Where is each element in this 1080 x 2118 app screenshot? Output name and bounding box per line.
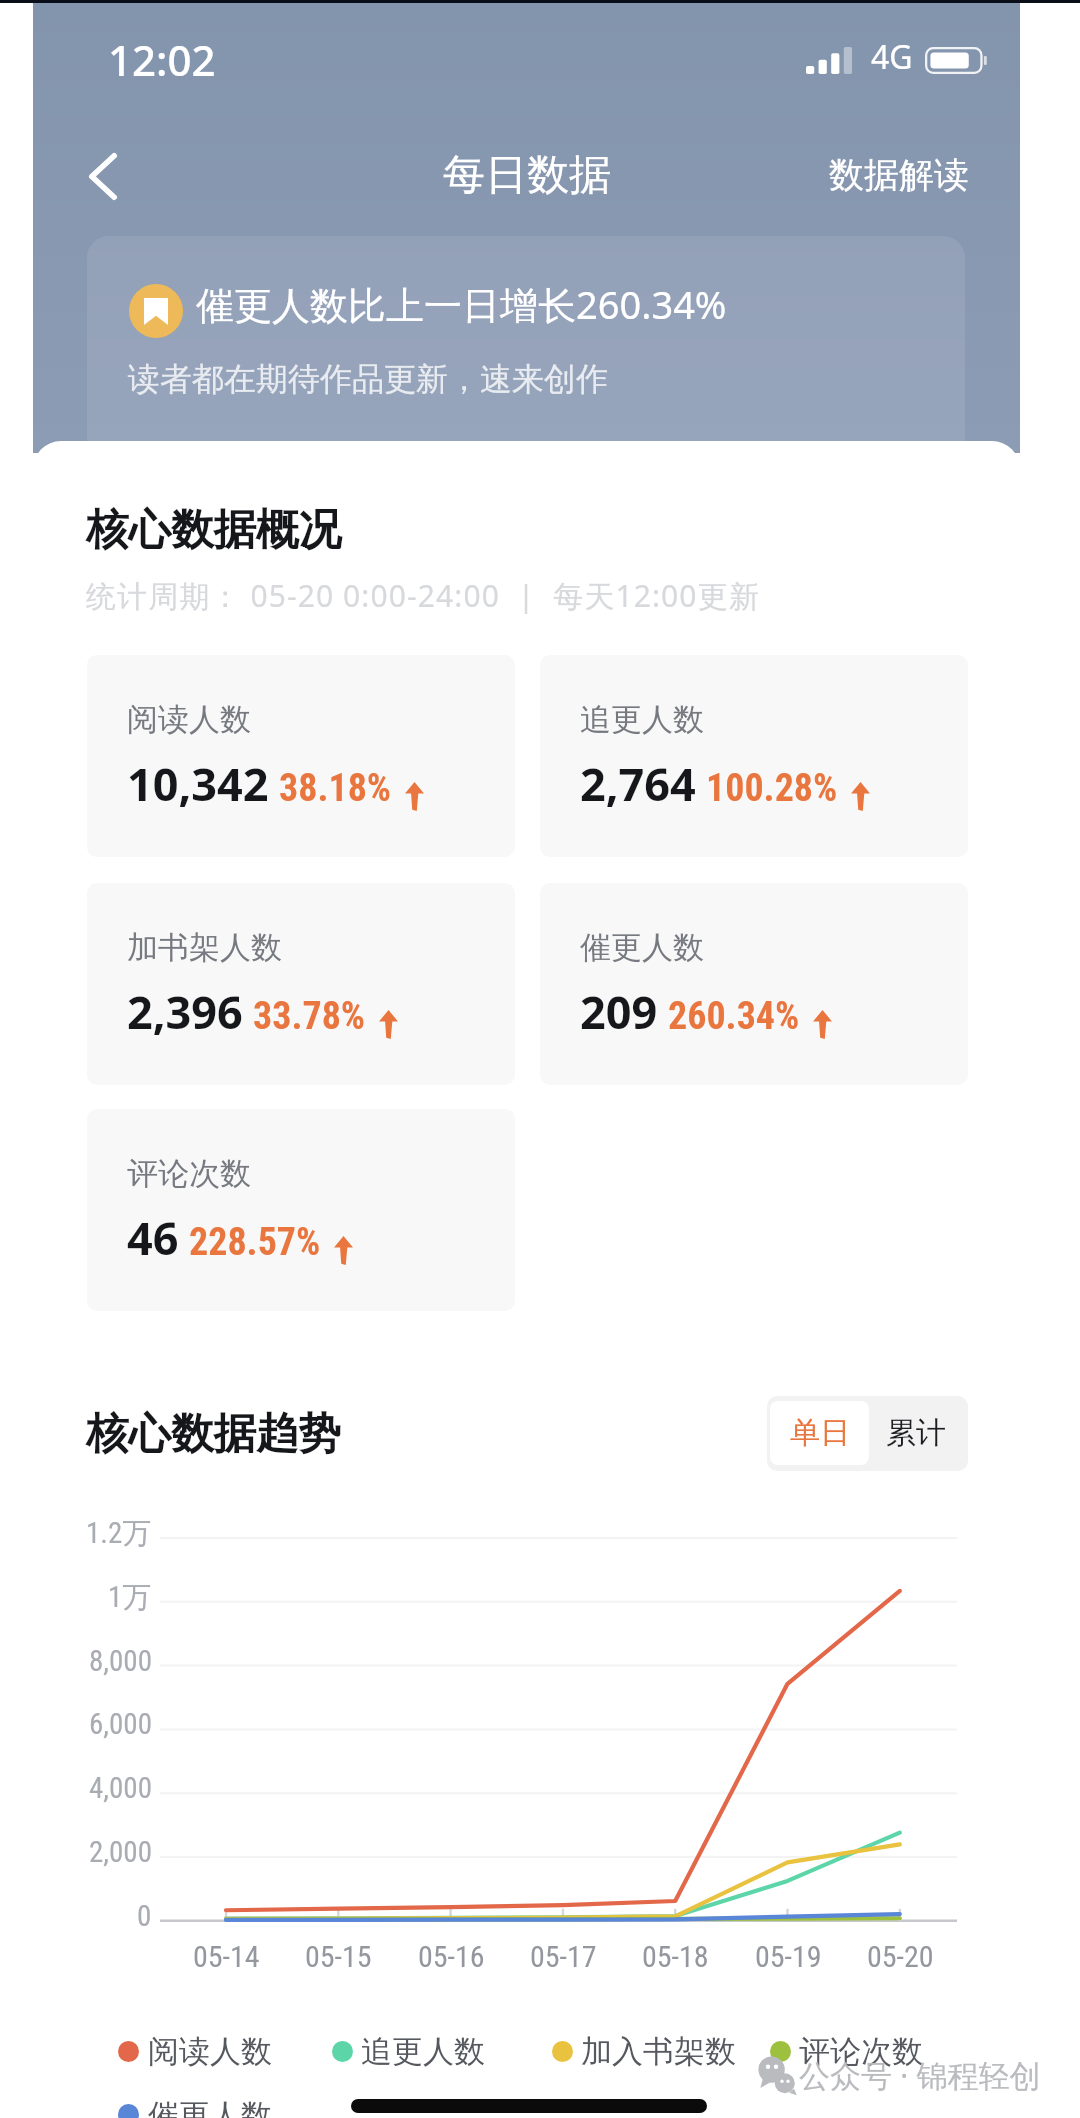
staticText: 催更人数比上一日增长260.34% xyxy=(196,278,727,330)
staticText: 2,396 xyxy=(127,981,243,1042)
staticText: 0 xyxy=(137,1899,152,1933)
staticText: 05-14 xyxy=(193,1939,260,1974)
staticText: 核心数据趋势 xyxy=(86,1407,341,1461)
staticText: 评论次数 xyxy=(799,2032,923,2071)
button[interactable] xyxy=(87,655,515,857)
staticText: 05-19 xyxy=(755,1939,822,1974)
staticText: 2,000 xyxy=(89,1835,152,1869)
staticText: 阅读人数 xyxy=(148,2032,272,2071)
staticText: 05-20 xyxy=(867,1939,934,1974)
staticText: 催更人数 xyxy=(580,928,704,967)
staticText: 加入书架数 xyxy=(581,2032,736,2071)
staticText: 1.2万 xyxy=(86,1515,152,1552)
staticText: 228.57% xyxy=(189,1220,321,1265)
button[interactable]: Back xyxy=(60,133,146,219)
button[interactable]: 数据解读 xyxy=(829,132,969,218)
button[interactable]: 累计 xyxy=(868,1402,964,1464)
staticText: 260.34% xyxy=(668,994,800,1039)
button[interactable] xyxy=(87,1109,515,1311)
staticText: 评论次数 xyxy=(127,1154,251,1193)
staticText: 05-15 xyxy=(305,1939,372,1974)
staticText: 100.28% xyxy=(706,766,838,811)
staticText: 每日数据 xyxy=(443,149,611,202)
staticText: 单日 xyxy=(790,1414,850,1452)
staticText: 4,000 xyxy=(89,1771,152,1805)
staticText: 追更人数 xyxy=(580,700,704,739)
staticText: 33.78% xyxy=(253,994,366,1039)
staticText: 统计周期： 05-20 0:00-24:00 | 每天12:00更新 xyxy=(86,575,760,616)
staticText: 209 xyxy=(580,981,658,1042)
staticText: 05-18 xyxy=(642,1939,709,1974)
button[interactable] xyxy=(87,883,515,1085)
staticText: 6,000 xyxy=(89,1707,152,1741)
staticText: 10,342 xyxy=(127,753,269,814)
staticText: 读者都在期待作品更新，速来创作 xyxy=(128,359,608,399)
staticText: 追更人数 xyxy=(361,2032,485,2071)
staticText: 46 xyxy=(127,1207,179,1268)
staticText: 累计 xyxy=(886,1414,946,1452)
staticText: 4G xyxy=(871,35,913,79)
staticText: 催更人数 xyxy=(148,2096,272,2118)
button[interactable]: 单日 xyxy=(770,1401,869,1465)
staticText: 12:02 xyxy=(108,31,216,88)
staticText: 加书架人数 xyxy=(127,928,282,967)
button[interactable] xyxy=(540,883,968,1085)
staticText: 38.18% xyxy=(279,766,392,811)
button[interactable] xyxy=(87,236,965,466)
button[interactable] xyxy=(540,655,968,857)
staticText: 阅读人数 xyxy=(127,700,251,739)
staticText: 8,000 xyxy=(89,1644,152,1678)
staticText: 1万 xyxy=(108,1579,152,1616)
staticText: 05-16 xyxy=(418,1939,485,1974)
staticText: 05-17 xyxy=(530,1939,597,1974)
staticText: 公众号 · 锦程轻创 xyxy=(799,2054,1041,2096)
staticText: 2,764 xyxy=(580,753,696,814)
staticText: 数据解读 xyxy=(829,153,969,197)
staticText: 核心数据概况 xyxy=(86,503,341,557)
